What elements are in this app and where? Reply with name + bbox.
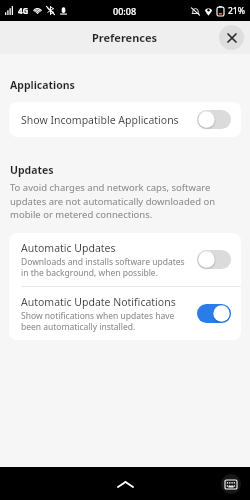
staticText: Updates — [10, 163, 54, 177]
staticText: Show Incompatible Applications — [21, 113, 179, 127]
staticText: Preferences — [92, 30, 158, 45]
button[interactable]: Back — [110, 469, 140, 499]
staticText: Downloads and installs software updates … — [21, 256, 189, 278]
staticText: Automatic Update Notifications — [21, 295, 176, 309]
staticText: Automatic Updates — [21, 241, 116, 255]
button[interactable]: Disabled — [197, 250, 231, 269]
button[interactable]: Disabled — [197, 110, 231, 129]
staticText: Applications — [10, 78, 75, 92]
button[interactable]: Keyboard — [221, 474, 241, 494]
staticText: To avoid charges and network caps, softw… — [10, 181, 240, 220]
staticText: 21% — [228, 5, 245, 17]
button[interactable]: Enabled — [197, 304, 231, 323]
button[interactable]: Show Incompatible Applications — [9, 102, 241, 137]
button[interactable]: Automatic Updates — [9, 233, 241, 286]
button[interactable]: Close — [219, 25, 244, 50]
button[interactable]: Automatic Update Notifications — [9, 287, 241, 340]
staticText: Show notifications when updates have bee… — [21, 310, 189, 332]
staticText: 00:08 — [113, 5, 137, 17]
staticText: 4G — [18, 5, 29, 16]
